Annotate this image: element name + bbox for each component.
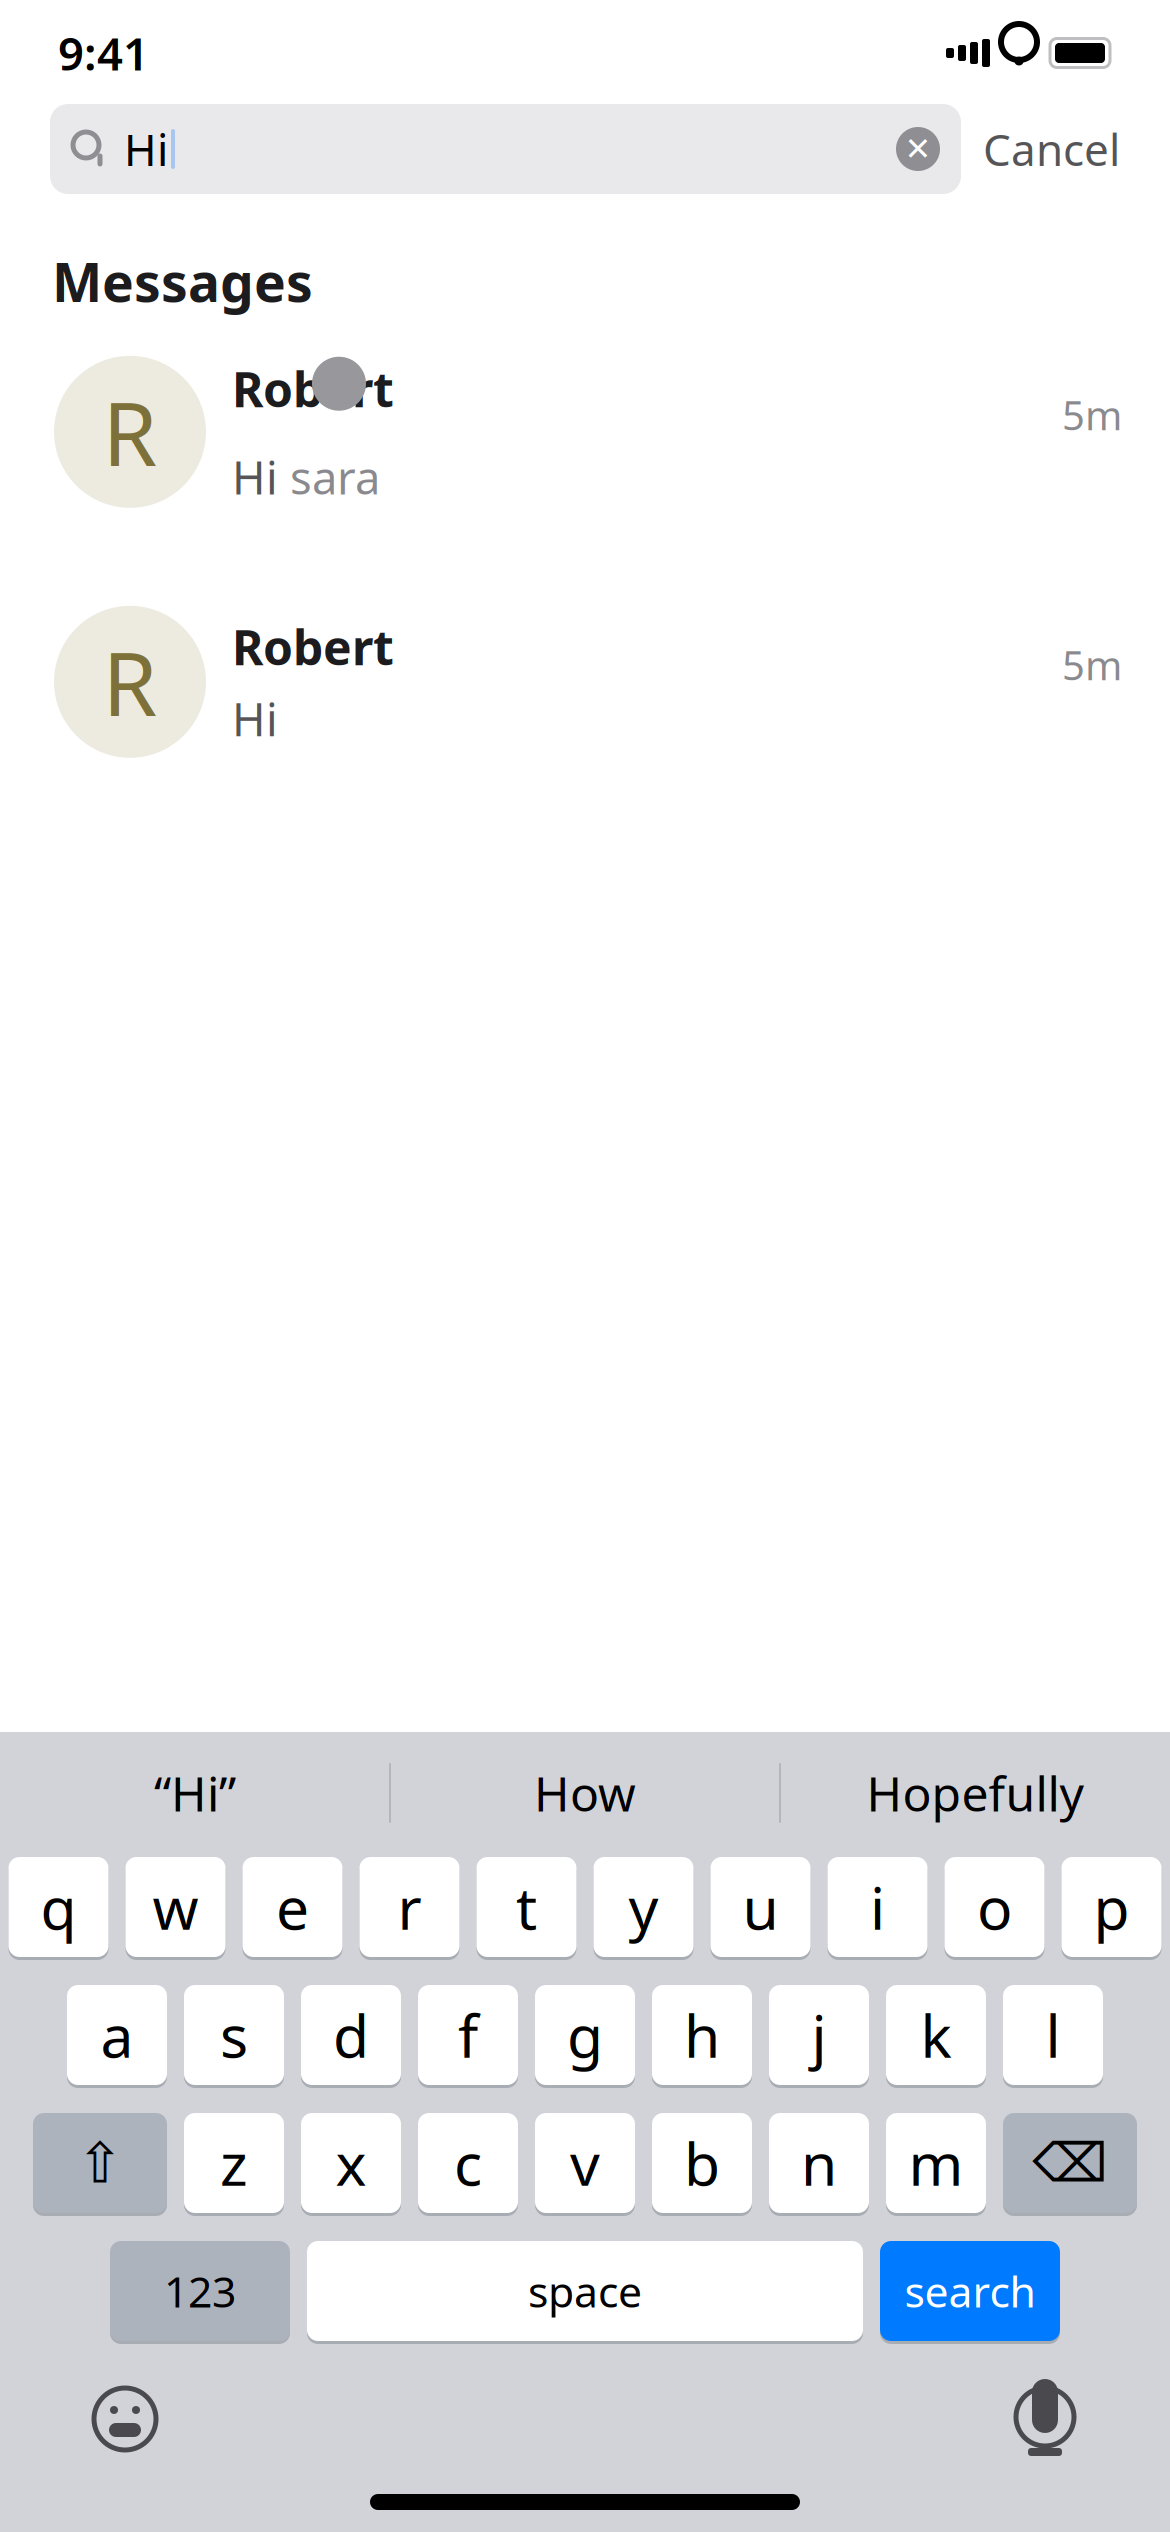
- staticText: search: [904, 2263, 1035, 2319]
- staticText: “Hi”: [154, 1761, 236, 1825]
- staticText: s: [220, 1996, 248, 2074]
- button[interactable]: q: [8, 1854, 108, 1960]
- staticText: v: [570, 2124, 600, 2202]
- button[interactable]: Shift: [33, 2110, 167, 2216]
- staticText: l: [1045, 1996, 1060, 2074]
- button[interactable]: e: [242, 1854, 342, 1960]
- staticText: 5m: [1062, 388, 1122, 441]
- staticText: x: [335, 2124, 366, 2202]
- staticText: h: [684, 1996, 720, 2074]
- button[interactable]: o: [944, 1854, 1044, 1960]
- button[interactable]: Cancel: [983, 110, 1120, 188]
- staticText: d: [333, 1996, 369, 2074]
- staticText: 123: [164, 2263, 236, 2319]
- staticText: Messages: [52, 246, 313, 317]
- button[interactable]: Hopefully: [781, 1733, 1169, 1853]
- staticText: Hi: [232, 689, 278, 749]
- button[interactable]: z: [184, 2110, 284, 2216]
- button[interactable]: h: [652, 1982, 752, 2088]
- staticText: space: [528, 2263, 642, 2319]
- button[interactable]: Clear text: [885, 116, 951, 182]
- staticText: p: [1093, 1868, 1129, 1946]
- button[interactable]: j: [769, 1982, 869, 2088]
- button[interactable]: Dictate: [1000, 2371, 1090, 2467]
- staticText: w: [152, 1868, 198, 1946]
- button[interactable]: d: [301, 1982, 401, 2088]
- staticText: Robert: [232, 357, 394, 420]
- button[interactable]: t: [476, 1854, 576, 1960]
- staticText: 9:41: [58, 23, 149, 83]
- button[interactable]: f: [418, 1982, 518, 2088]
- button[interactable]: g: [535, 1982, 635, 2088]
- button[interactable]: n: [769, 2110, 869, 2216]
- staticText: sara: [278, 447, 380, 507]
- button[interactable]: r: [359, 1854, 459, 1960]
- staticText: e: [276, 1868, 309, 1946]
- staticText: ⌫: [1032, 2133, 1107, 2193]
- staticText: Cancel: [983, 120, 1120, 178]
- button[interactable]: b: [652, 2110, 752, 2216]
- button[interactable]: m: [886, 2110, 986, 2216]
- button[interactable]: k: [886, 1982, 986, 2088]
- button[interactable]: How: [391, 1733, 779, 1853]
- staticText: q: [40, 1868, 76, 1946]
- button[interactable]: p: [1061, 1854, 1161, 1960]
- staticText: f: [458, 1996, 478, 2074]
- button[interactable]: w: [125, 1854, 225, 1960]
- button[interactable]: “Hi”: [1, 1733, 389, 1853]
- staticText: n: [801, 2124, 837, 2202]
- button[interactable]: R: [0, 347, 1170, 517]
- button[interactable]: u: [710, 1854, 810, 1960]
- staticText: a: [100, 1996, 133, 2074]
- staticText: k: [920, 1996, 951, 2074]
- button[interactable]: l: [1003, 1982, 1103, 2088]
- staticText: Hopefully: [866, 1761, 1083, 1825]
- staticText: c: [454, 2124, 482, 2202]
- button[interactable]: v: [535, 2110, 635, 2216]
- staticText: g: [567, 1996, 603, 2074]
- staticText: ⇧: [76, 2131, 123, 2195]
- staticText: u: [742, 1868, 778, 1946]
- button[interactable]: y: [593, 1854, 693, 1960]
- staticText: i: [870, 1868, 885, 1946]
- staticText: z: [220, 2124, 248, 2202]
- button[interactable]: search: [880, 2238, 1060, 2344]
- staticText: t: [516, 1868, 537, 1946]
- button[interactable]: R: [0, 597, 1170, 767]
- staticText: m: [908, 2124, 963, 2202]
- staticText: b: [684, 2124, 720, 2202]
- staticText: o: [977, 1868, 1012, 1946]
- staticText: j: [811, 1996, 826, 2074]
- button[interactable]: c: [418, 2110, 518, 2216]
- button[interactable]: i: [827, 1854, 927, 1960]
- button[interactable]: Emoji: [80, 2374, 170, 2464]
- button[interactable]: s: [184, 1982, 284, 2088]
- staticText: Robert: [232, 615, 394, 679]
- button[interactable]: space: [307, 2238, 863, 2344]
- button[interactable]: x: [301, 2110, 401, 2216]
- staticText: 5m: [1062, 638, 1122, 691]
- staticText: r: [397, 1868, 421, 1946]
- button[interactable]: Delete: [1003, 2110, 1137, 2216]
- staticText: How: [534, 1761, 636, 1825]
- staticText: R: [102, 623, 157, 740]
- staticText: ✕: [904, 131, 931, 167]
- staticText: Hi: [124, 120, 168, 178]
- staticText: Hi: [232, 447, 278, 507]
- button[interactable]: a: [67, 1982, 167, 2088]
- staticText: R: [102, 373, 157, 490]
- staticText: y: [628, 1868, 658, 1946]
- button[interactable]: 123: [110, 2238, 290, 2344]
